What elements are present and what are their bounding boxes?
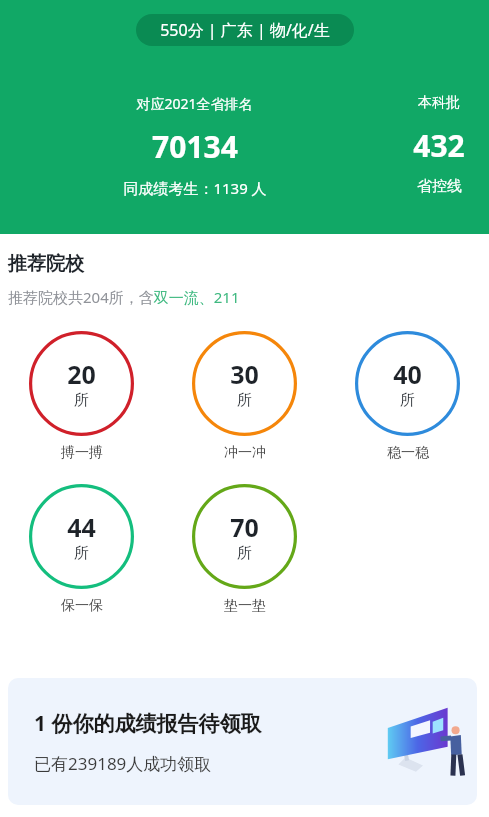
staticText: 40	[393, 357, 422, 391]
staticText: 550分 | 广东 | 物/化/生	[160, 19, 330, 41]
staticText: 垫一垫	[224, 597, 266, 615]
staticText: 所	[400, 391, 415, 410]
staticText: 30	[230, 357, 259, 391]
staticText: 保一保	[61, 597, 103, 615]
staticText: 所	[74, 544, 89, 563]
button[interactable]: 30	[163, 331, 326, 462]
staticText: 同成绩考生：1139 人	[123, 178, 267, 198]
staticText: 已有239189人成功领取	[34, 752, 212, 775]
staticText: 70	[230, 510, 259, 544]
button[interactable]: 1 份你的成绩报告待领取	[8, 678, 477, 805]
staticText: 推荐院校	[8, 252, 84, 276]
staticText: 省控线	[417, 177, 462, 196]
staticText: 432	[413, 125, 465, 166]
button[interactable]: 44	[0, 484, 163, 615]
button[interactable]: 40	[326, 331, 489, 462]
staticText: 冲一冲	[224, 444, 266, 462]
staticText: 70134	[152, 126, 238, 167]
staticText: 对应2021全省排名	[136, 94, 253, 113]
staticText: 44	[67, 510, 96, 544]
button[interactable]: 70	[163, 484, 326, 615]
button[interactable]: 20	[0, 331, 163, 462]
staticText: 20	[67, 357, 96, 391]
staticText: 搏一搏	[61, 444, 103, 462]
other: 成绩报告插图	[379, 703, 467, 781]
staticText: 稳一稳	[387, 444, 429, 462]
staticText: 所	[237, 544, 252, 563]
staticText: 所	[237, 391, 252, 410]
staticText: 推荐院校共204所，含双一流、211	[8, 287, 240, 307]
button[interactable]: 550分 | 广东 | 物/化/生	[136, 14, 354, 46]
staticText: 1 份你的成绩报告待领取	[34, 709, 262, 738]
staticText: 所	[74, 391, 89, 410]
staticText: 本科批	[418, 94, 460, 112]
